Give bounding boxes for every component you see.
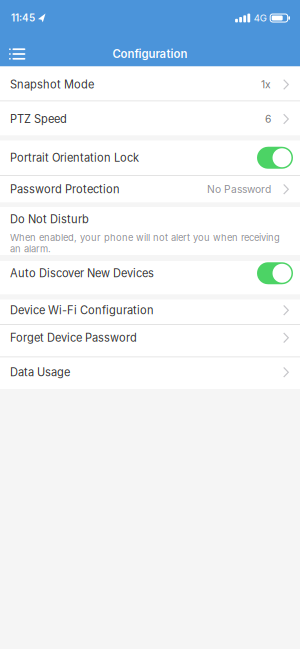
staticText: Data Usage (10, 366, 70, 379)
staticText: 1x (261, 78, 271, 91)
button[interactable]: Password Protection (0, 176, 300, 202)
button[interactable]: Data Usage (0, 357, 300, 389)
button[interactable]: Snapshot Mode (0, 66, 300, 100)
staticText: Configuration (112, 47, 187, 61)
staticText: Snapshot Mode (10, 78, 94, 91)
staticText: 4G (254, 12, 267, 24)
button[interactable]: Device Wi-Fi Configuration (0, 299, 300, 324)
staticText: Device Wi-Fi Configuration (10, 304, 154, 317)
staticText: Auto Discover New Devices (10, 267, 154, 280)
staticText: When enabled, your phone will not alert … (10, 232, 280, 254)
button[interactable]: PTZ Speed (0, 101, 300, 135)
button[interactable]: Portrait Orientation Lock (0, 140, 300, 175)
staticText: Do Not Disturb (10, 212, 89, 226)
staticText: Forget Device Password (10, 331, 137, 344)
button[interactable]: Menu (0, 48, 25, 60)
button[interactable]: Do Not Disturb (0, 207, 300, 255)
staticText: PTZ Speed (10, 112, 67, 126)
staticText: Portrait Orientation Lock (10, 151, 139, 164)
button[interactable]: Forget Device Password (0, 325, 300, 356)
staticText: 11:45 (11, 12, 35, 24)
staticText: 6 (265, 113, 271, 125)
button[interactable]: Auto Discover New Devices (0, 261, 300, 294)
staticText: Password Protection (10, 183, 120, 196)
staticText: No Password (207, 183, 271, 195)
